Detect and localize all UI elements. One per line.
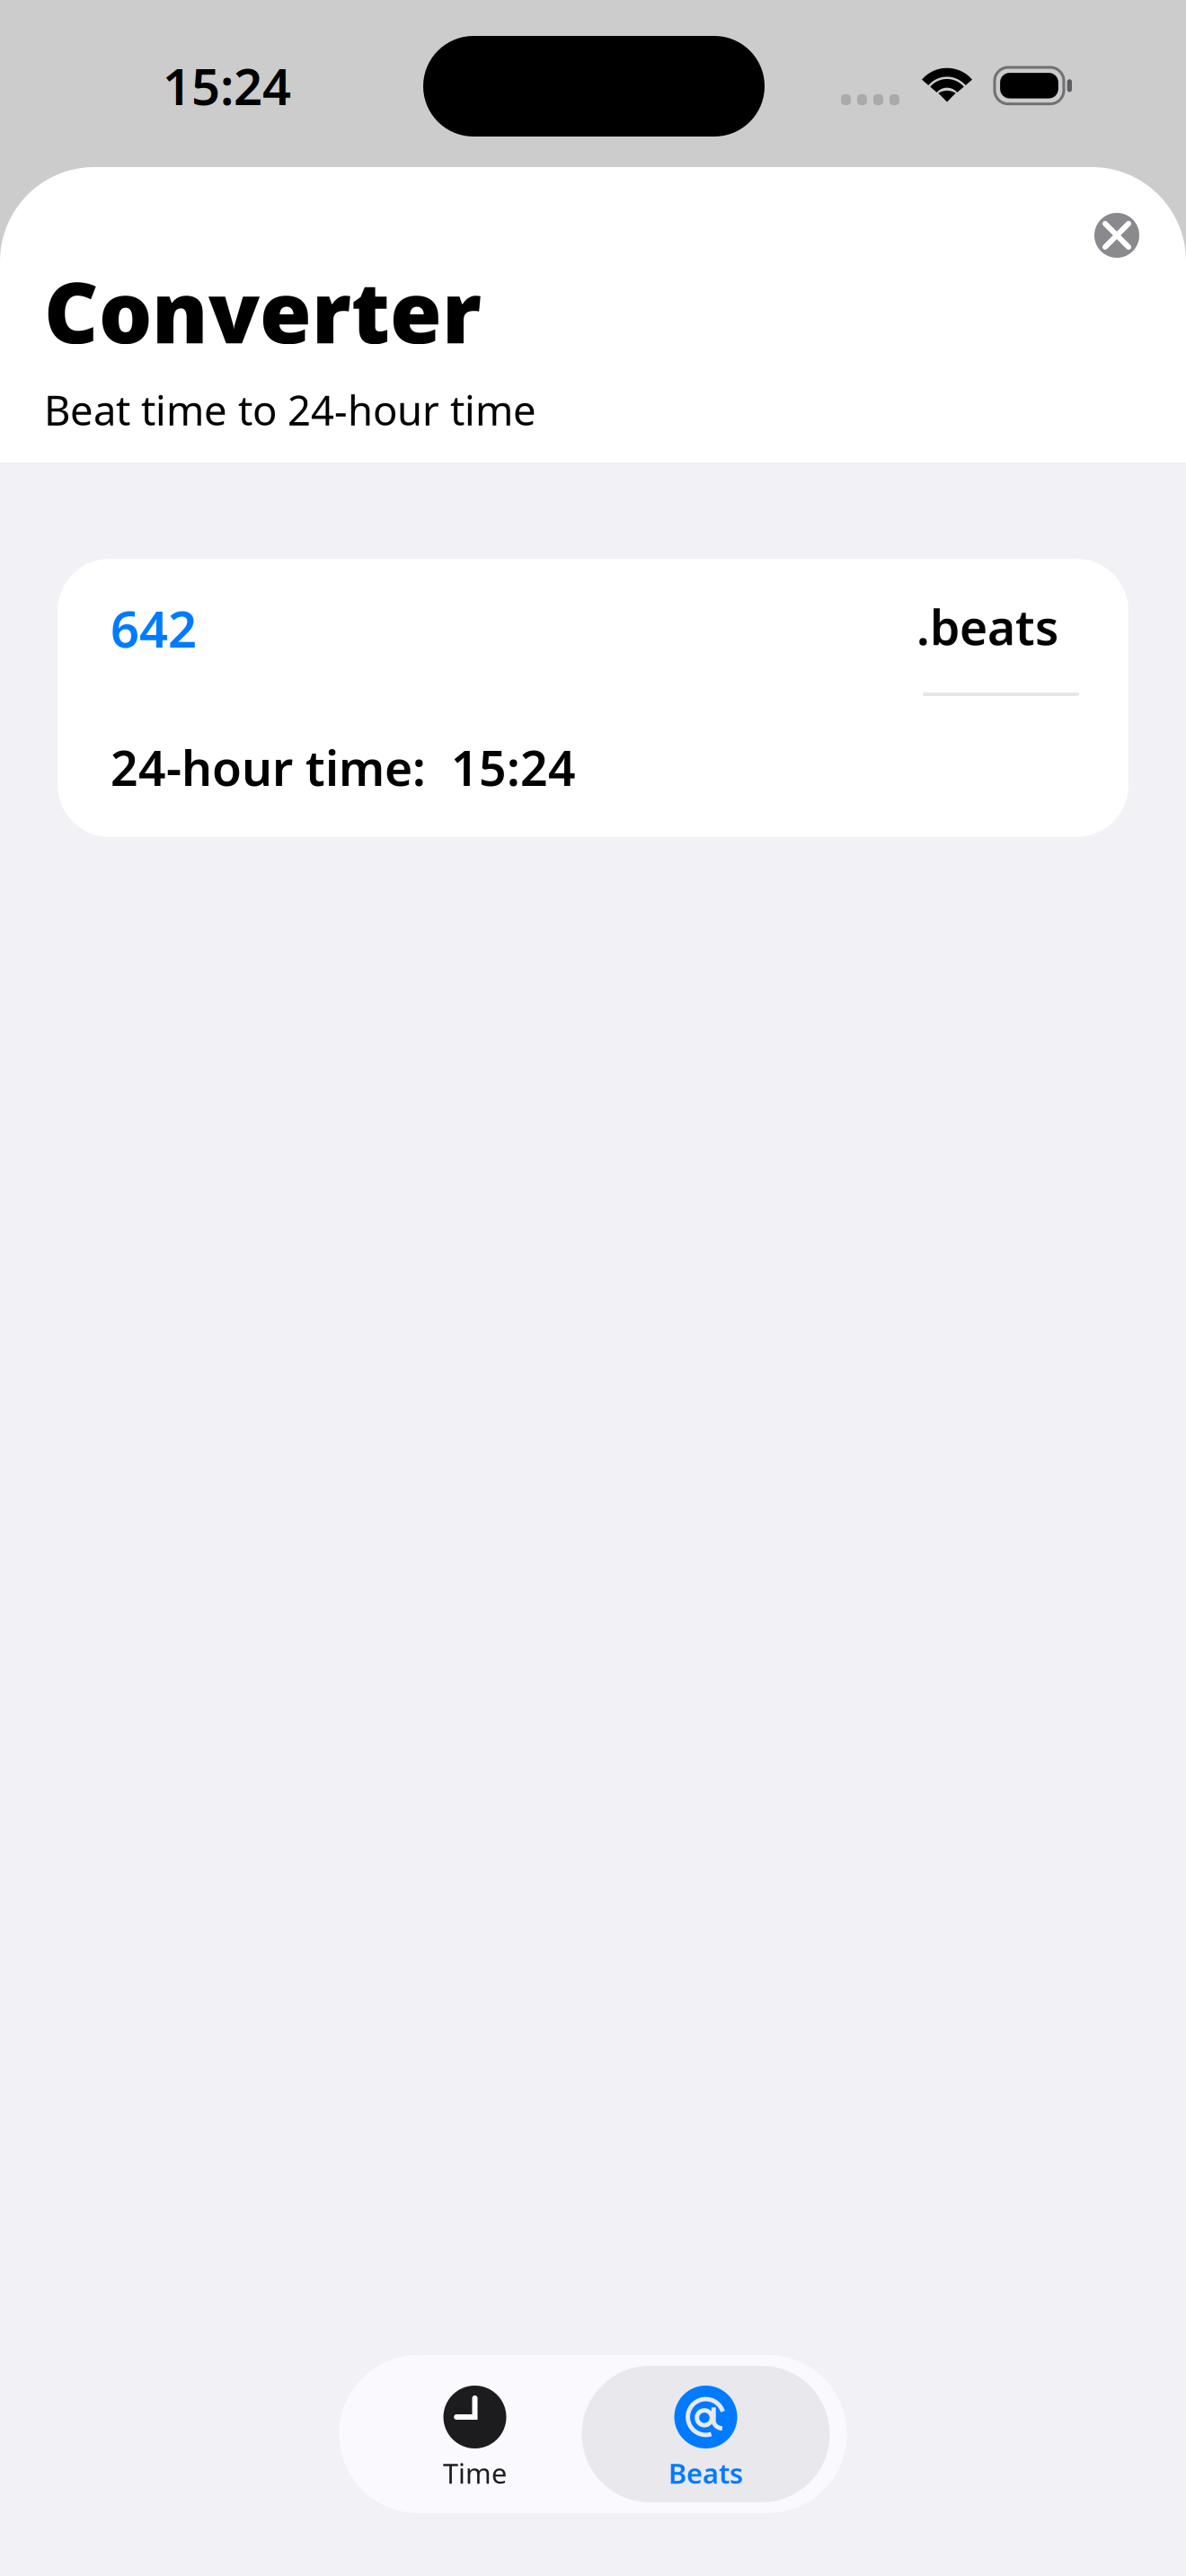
- button[interactable]: Time: [339, 2366, 582, 2502]
- button[interactable]: Beats: [582, 2366, 830, 2502]
- staticText: Beats: [668, 2455, 743, 2491]
- button[interactable]: Close: [1078, 197, 1155, 274]
- staticText: 24-hour time: 15:24: [111, 736, 576, 799]
- staticText: Time: [443, 2455, 507, 2491]
- staticText: 15:24: [163, 52, 291, 119]
- staticText: Converter: [44, 255, 482, 366]
- staticText: Beat time to 24-hour time: [44, 383, 536, 437]
- staticText: 642: [111, 595, 197, 662]
- staticText: .beats: [916, 595, 1058, 658]
